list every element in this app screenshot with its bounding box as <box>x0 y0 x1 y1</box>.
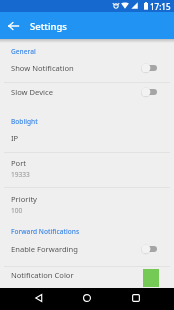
staticText: Slow Device <box>11 87 53 97</box>
staticText: 100 <box>11 206 23 215</box>
staticText: Priority <box>11 194 37 204</box>
staticText: 17:15 <box>150 1 171 12</box>
button[interactable]: Home <box>72 287 102 309</box>
button[interactable]: IP <box>0 125 174 150</box>
button[interactable]: Recent apps <box>121 287 151 309</box>
staticText: 19333 <box>11 170 30 179</box>
button[interactable]: Show Notification <box>0 55 174 81</box>
staticText: Boblight <box>11 117 38 126</box>
staticText: Settings <box>30 20 67 33</box>
staticText: Port <box>11 158 27 168</box>
button[interactable]: Port <box>0 151 174 186</box>
staticText: Notification Color <box>11 270 74 280</box>
button[interactable]: Notification Color <box>0 263 174 287</box>
staticText: General <box>11 47 36 56</box>
button[interactable]: Priority <box>0 189 174 220</box>
button[interactable]: Enable Forwarding <box>0 234 174 264</box>
button[interactable]: Slow Device <box>0 79 174 105</box>
staticText: Enable Forwarding <box>11 244 78 254</box>
staticText: Forward Notifications <box>11 227 80 236</box>
staticText: IP <box>11 133 19 143</box>
staticText: Show Notification <box>11 63 74 73</box>
button[interactable]: Back <box>24 287 54 309</box>
button[interactable]: Navigate up <box>0 12 26 39</box>
